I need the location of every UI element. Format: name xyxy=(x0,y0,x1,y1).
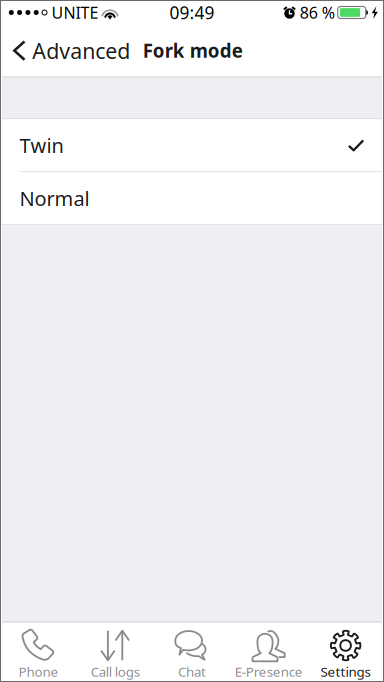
staticText: Phone xyxy=(18,663,58,680)
staticText: UNITE xyxy=(51,2,98,23)
button[interactable]: Twin xyxy=(2,119,382,171)
button[interactable]: Phone xyxy=(0,622,77,681)
staticText: E-Presence xyxy=(235,663,303,680)
button[interactable]: Settings xyxy=(307,622,384,681)
button[interactable]: Normal xyxy=(2,172,382,224)
button[interactable]: Chat xyxy=(154,622,230,681)
staticText: Call logs xyxy=(91,663,140,680)
staticText: 09:49 xyxy=(169,1,214,24)
staticText: Advanced xyxy=(32,36,130,65)
button[interactable]: Advanced xyxy=(2,27,135,74)
button[interactable]: E-Presence xyxy=(230,622,307,681)
staticText: Fork mode xyxy=(143,38,243,63)
button[interactable]: Call logs xyxy=(77,622,154,681)
staticText: 86 % xyxy=(300,2,335,23)
staticText: Normal xyxy=(19,185,89,212)
staticText: Chat xyxy=(178,663,206,680)
staticText: Twin xyxy=(19,132,63,159)
staticText: Settings xyxy=(321,663,371,680)
button[interactable]: Fork mode xyxy=(135,29,249,72)
